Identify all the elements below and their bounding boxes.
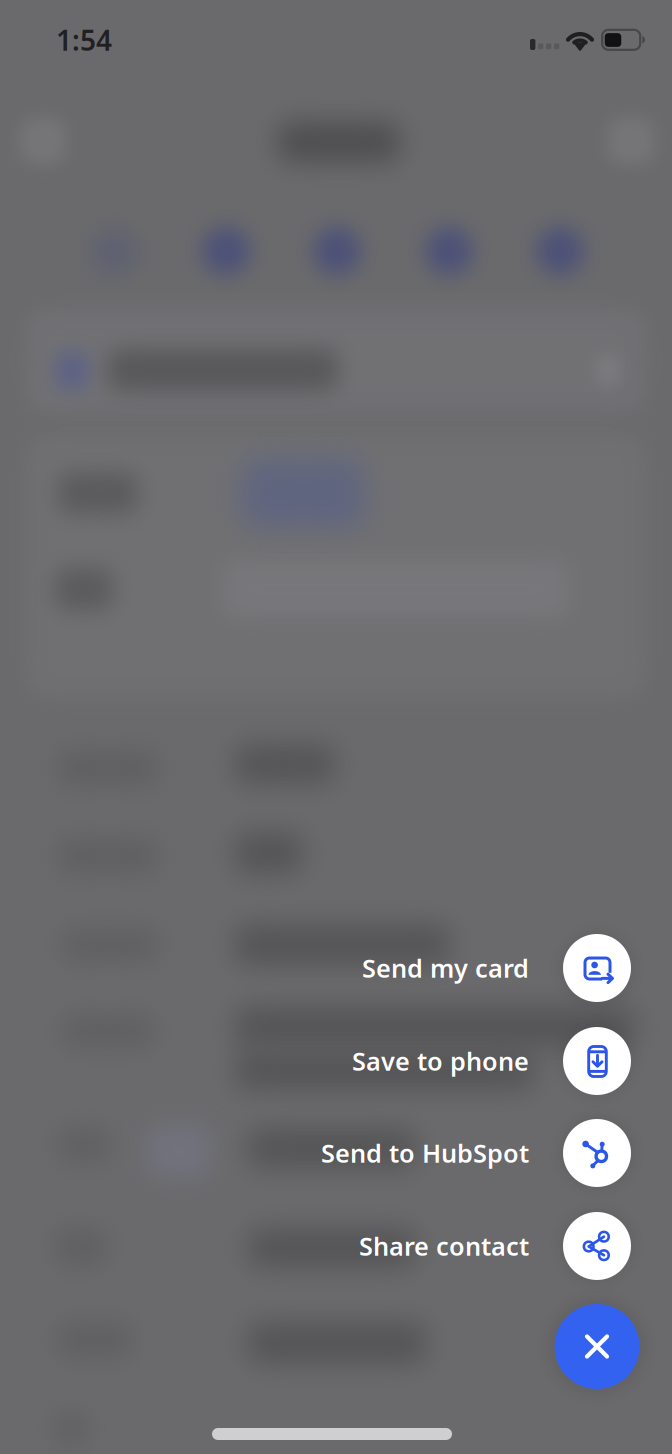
staticText: Share contact bbox=[359, 1229, 529, 1263]
button[interactable]: Send my card bbox=[301, 930, 631, 1006]
button[interactable]: Share contact bbox=[301, 1208, 631, 1284]
button[interactable]: Close bbox=[554, 1304, 639, 1389]
staticText: Save to phone bbox=[352, 1044, 529, 1078]
staticText: Send to HubSpot bbox=[321, 1136, 529, 1170]
button[interactable]: Save to phone bbox=[301, 1023, 631, 1099]
staticText: Send my card bbox=[362, 951, 529, 985]
button[interactable]: Send to HubSpot bbox=[301, 1115, 631, 1191]
staticText: 1:54 bbox=[56, 21, 112, 59]
